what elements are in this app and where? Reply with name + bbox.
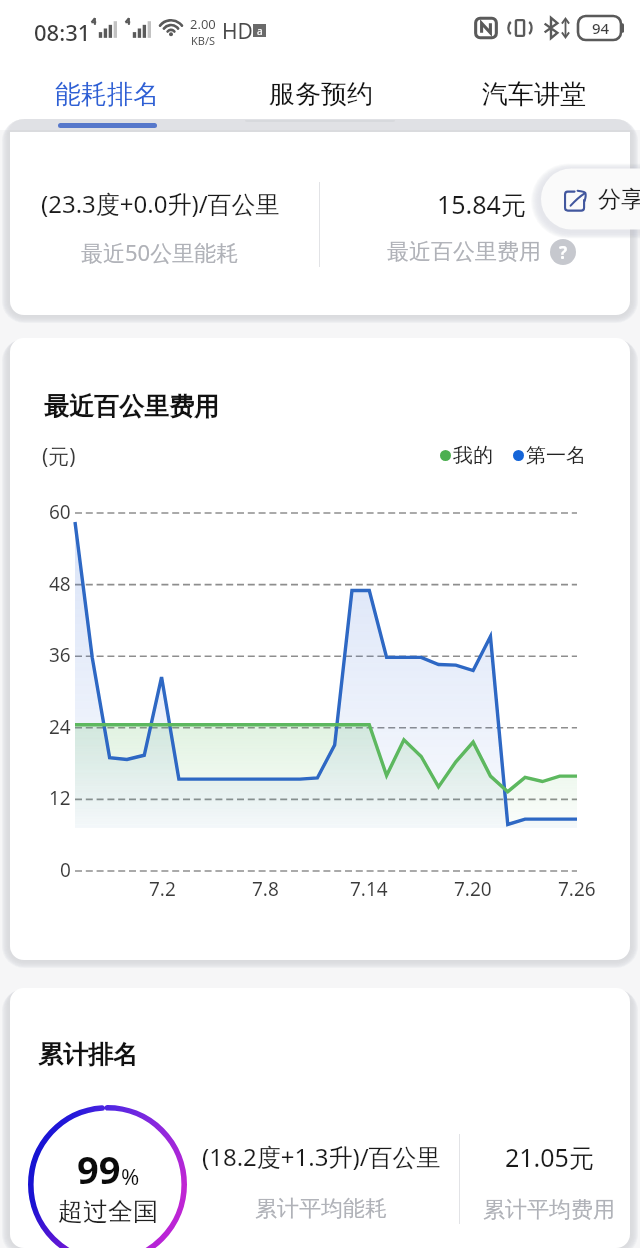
- staticText: 0: [60, 857, 71, 883]
- staticText: 7.14: [350, 876, 388, 902]
- staticText: %: [121, 1161, 140, 1191]
- staticText: (18.2度+1.3升)/百公里: [202, 1140, 441, 1173]
- staticText: 能耗排名: [55, 78, 159, 111]
- button[interactable]: 汽车讲堂: [427, 60, 640, 130]
- staticText: 最近50公里能耗: [81, 237, 239, 267]
- staticText: ?: [559, 241, 568, 264]
- staticText: 60: [49, 499, 71, 525]
- staticText: 24: [49, 714, 71, 740]
- staticText: 服务预约: [269, 78, 373, 111]
- staticText: 累计排名: [38, 1039, 138, 1070]
- staticText: 超过全国: [58, 1196, 158, 1227]
- staticText: 48: [49, 571, 71, 597]
- staticText: 最近百公里费用: [387, 238, 541, 266]
- staticText: 08:31: [34, 17, 91, 47]
- staticText: 12: [49, 785, 71, 811]
- staticText: 7.2: [149, 876, 176, 902]
- staticText: 15.84元: [437, 187, 526, 221]
- staticText: (元): [42, 442, 76, 471]
- staticText: (23.3度+0.0升)/百公里: [41, 187, 280, 220]
- staticText: 36: [49, 642, 71, 668]
- staticText: 7.8: [252, 876, 279, 902]
- staticText: 99: [77, 1143, 121, 1195]
- staticText: 最近百公里费用: [44, 391, 219, 422]
- staticText: 7.26: [558, 876, 596, 902]
- staticText: 7.20: [454, 876, 492, 902]
- staticText: 累计平均能耗: [255, 1195, 387, 1223]
- staticText: 累计平均费用: [483, 1196, 615, 1224]
- staticText: KB/S: [191, 33, 216, 48]
- staticText: 我的: [453, 443, 493, 468]
- staticText: 分享: [598, 185, 640, 214]
- staticText: 94: [592, 18, 610, 38]
- button[interactable]: 能耗排名: [0, 60, 214, 130]
- staticText: a: [257, 24, 263, 37]
- staticText: 汽车讲堂: [482, 78, 586, 111]
- staticText: 第一名: [526, 443, 586, 468]
- staticText: 21.05元: [505, 1140, 594, 1174]
- staticText: HD: [222, 17, 253, 46]
- button[interactable]: 分享: [541, 164, 640, 234]
- button[interactable]: 服务预约: [214, 60, 427, 130]
- staticText: 2.00: [190, 15, 216, 33]
